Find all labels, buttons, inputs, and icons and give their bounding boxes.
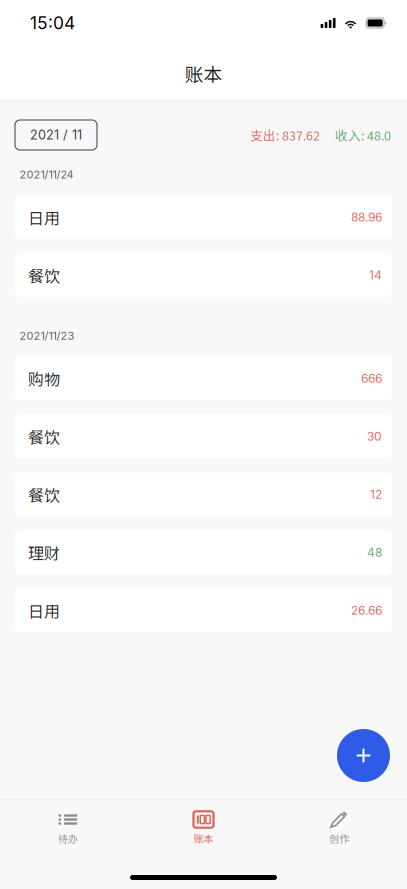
staticText: 2021/11/23 <box>19 329 74 342</box>
button[interactable]: 日用 <box>15 195 392 239</box>
staticText: 账本 <box>184 60 222 87</box>
button[interactable]: 购物 <box>15 356 392 400</box>
staticText: 日用 <box>28 599 60 622</box>
staticText: 日用 <box>28 206 60 229</box>
staticText: 餐饮 <box>28 483 60 506</box>
staticText: 30 <box>367 429 382 444</box>
staticText: 14 <box>369 268 382 282</box>
staticText: 待办 <box>58 831 78 845</box>
button[interactable]: Add entry <box>337 729 390 782</box>
button[interactable]: 餐饮 <box>15 253 392 297</box>
staticText: 12 <box>370 487 382 502</box>
staticText: 购物 <box>28 367 60 390</box>
staticText: 48 <box>367 545 382 560</box>
staticText: 2021/11/24 <box>19 168 73 181</box>
staticText: 2021 / 11 <box>30 127 82 143</box>
staticText: 26.66 <box>351 603 382 618</box>
staticText: 餐饮 <box>28 425 60 448</box>
button[interactable]: 待办 <box>0 793 136 849</box>
staticText: 理财 <box>28 541 60 564</box>
button[interactable]: 创作 <box>271 793 407 849</box>
staticText: 88.96 <box>351 210 382 224</box>
staticText: 15:04 <box>30 12 75 33</box>
button[interactable]: 2021 / 11 <box>15 120 97 150</box>
button[interactable]: 账本 <box>136 793 271 849</box>
staticText: 支出: 837.62 <box>250 126 320 144</box>
staticText: 666 <box>361 371 382 386</box>
staticText: 创作 <box>329 831 349 845</box>
button[interactable]: 餐饮 <box>15 414 392 458</box>
button[interactable]: 餐饮 <box>15 472 392 516</box>
staticText: 收入: 48.0 <box>335 126 391 144</box>
staticText: 账本 <box>193 831 213 845</box>
button[interactable]: 日用 <box>15 588 392 632</box>
staticText: 餐饮 <box>28 264 60 287</box>
button[interactable]: 理财 <box>15 530 392 574</box>
